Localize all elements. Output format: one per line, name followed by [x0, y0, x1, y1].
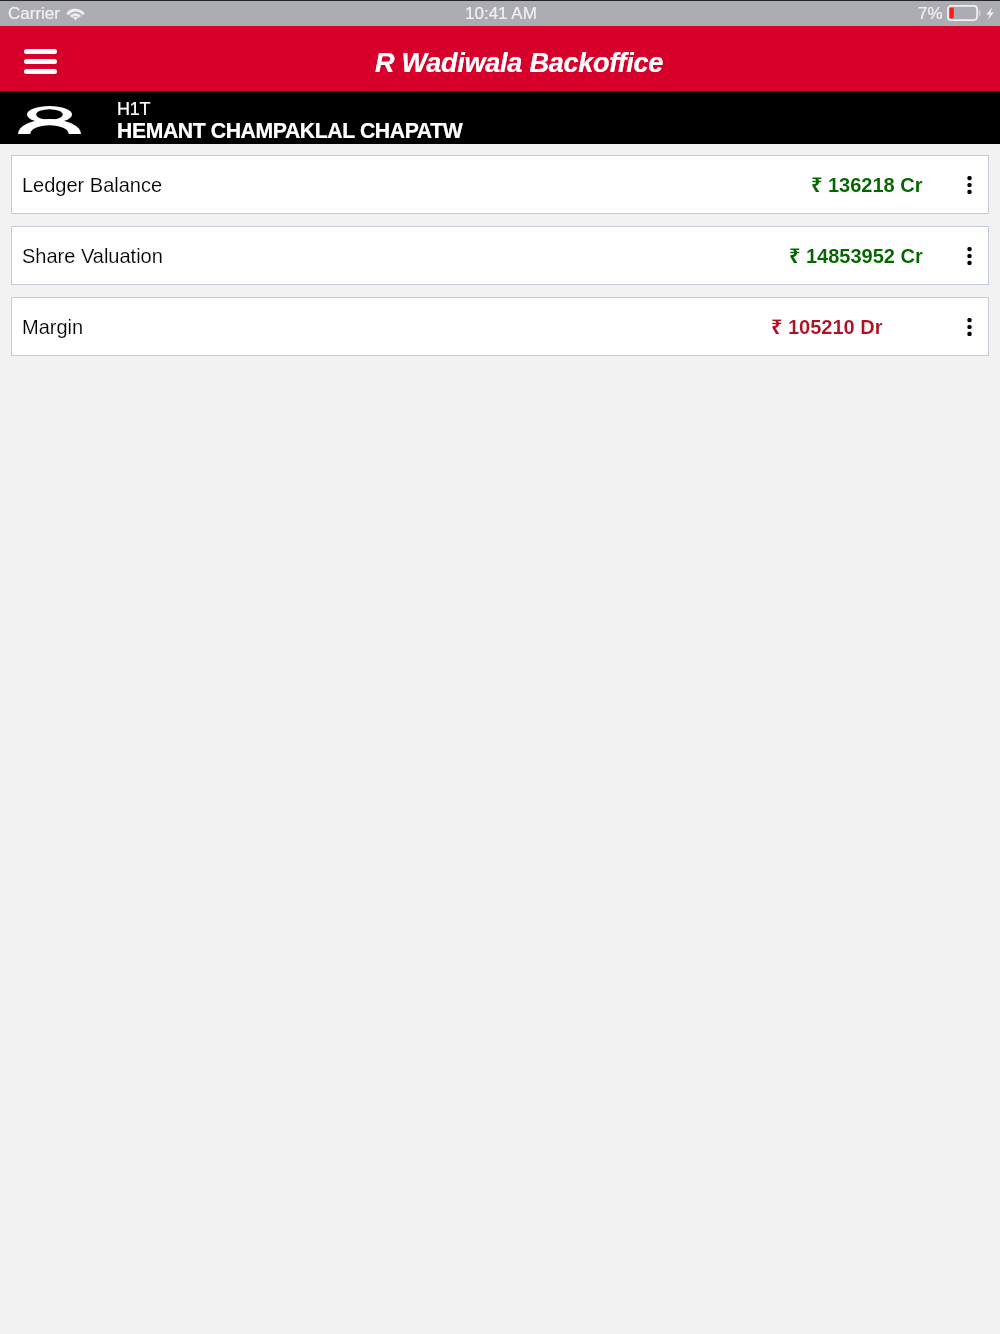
staticText: ₹ 105210 Dr	[771, 313, 883, 340]
button[interactable]: H1T	[0, 91, 1000, 144]
staticText: Carrier	[8, 4, 60, 23]
staticText: HEMANT CHAMPAKLAL CHAPATW	[117, 119, 463, 143]
staticText: Share Valuation	[22, 245, 163, 267]
staticText: 10:41 AM	[465, 4, 537, 23]
button[interactable]: More options	[923, 226, 989, 285]
button[interactable]: Margin	[11, 297, 989, 356]
staticText: H1T	[117, 99, 151, 119]
staticText: Ledger Balance	[22, 174, 163, 196]
staticText: R Wadiwala Backoffice	[375, 48, 664, 78]
staticText: 7%	[918, 4, 943, 23]
button[interactable]: More options	[923, 297, 989, 356]
button[interactable]: Share Valuation	[11, 226, 989, 285]
button[interactable]: More options	[923, 155, 989, 214]
staticText: ₹ 136218 Cr	[811, 171, 923, 198]
staticText: Margin	[22, 316, 84, 338]
button[interactable]: Ledger Balance	[11, 155, 989, 214]
staticText: ₹ 14853952 Cr	[789, 242, 923, 269]
button[interactable]: Menu	[0, 26, 81, 91]
